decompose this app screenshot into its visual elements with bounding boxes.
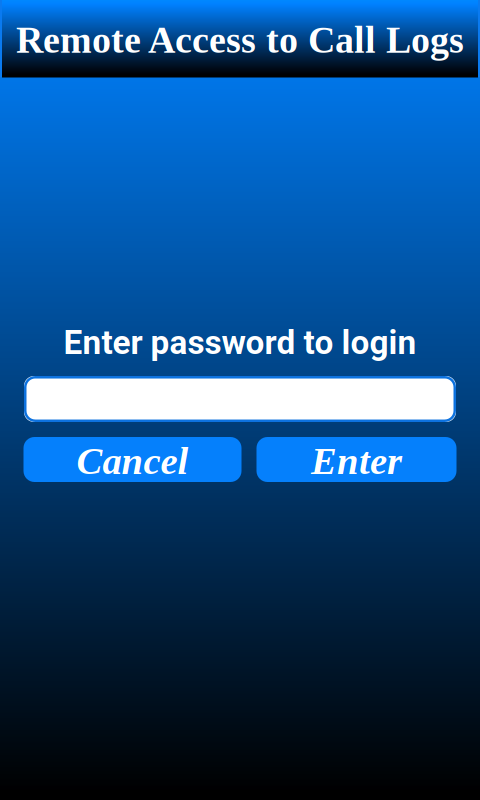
button[interactable]: Enter	[256, 437, 456, 482]
button[interactable]: Password	[24, 376, 456, 422]
staticText: Cancel	[76, 440, 188, 482]
button[interactable]: Cancel	[23, 437, 241, 482]
staticText: Enter password to login	[63, 323, 416, 362]
staticText: Enter	[311, 440, 402, 482]
staticText: Remote Access to Call Logs	[16, 19, 464, 61]
